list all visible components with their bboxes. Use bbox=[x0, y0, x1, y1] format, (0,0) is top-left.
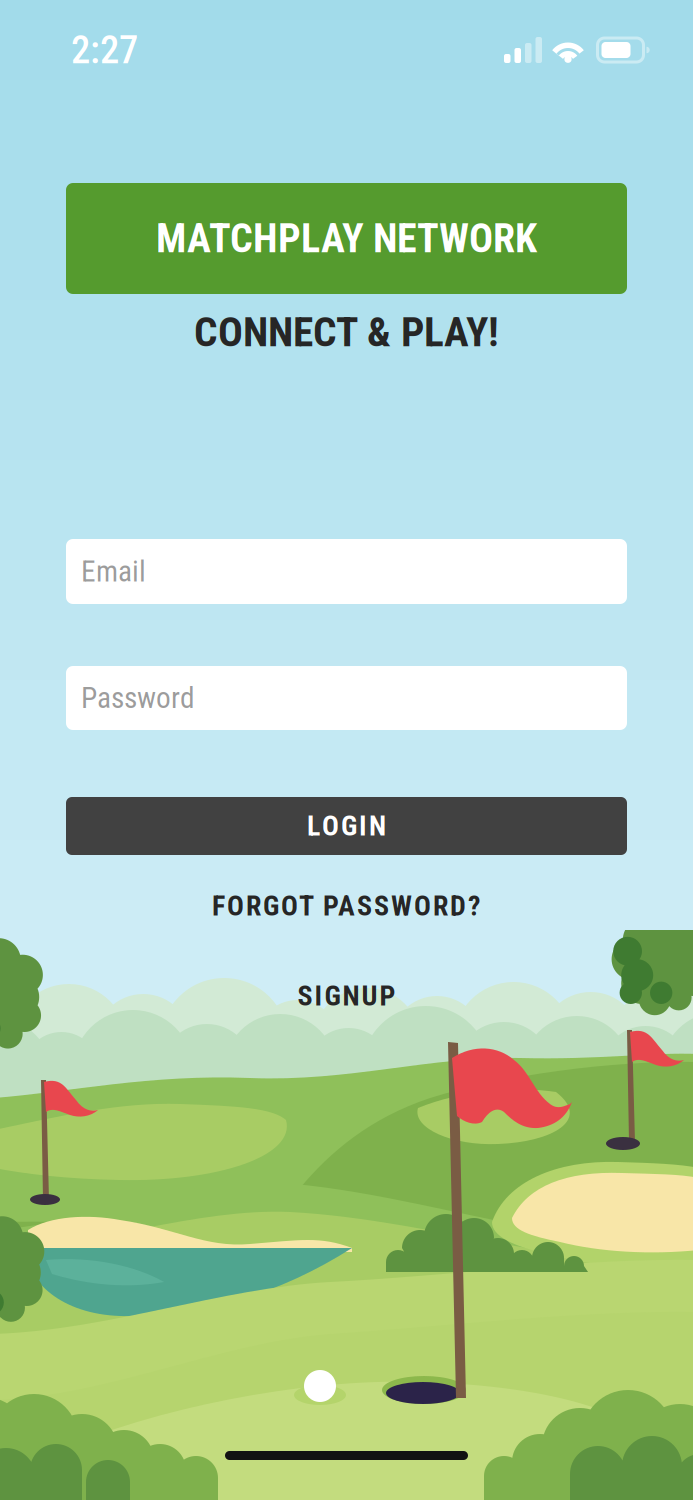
button[interactable]: LOGIN bbox=[66, 797, 627, 855]
button[interactable]: SIGNUP bbox=[0, 976, 693, 1016]
staticText: 2:27 bbox=[71, 27, 138, 73]
staticText: SIGNUP bbox=[297, 980, 395, 1012]
staticText: LOGIN bbox=[307, 810, 386, 842]
button[interactable]: FORGOT PASSWORD? bbox=[0, 886, 693, 926]
staticText: Email bbox=[81, 554, 146, 589]
staticText: MATCHPLAY NETWORK bbox=[156, 215, 537, 262]
staticText: Password bbox=[81, 681, 195, 715]
button[interactable]: Password bbox=[66, 666, 627, 730]
staticText: CONNECT & PLAY! bbox=[194, 308, 499, 356]
button[interactable]: Email bbox=[66, 539, 627, 604]
staticText: FORGOT PASSWORD? bbox=[212, 890, 481, 922]
